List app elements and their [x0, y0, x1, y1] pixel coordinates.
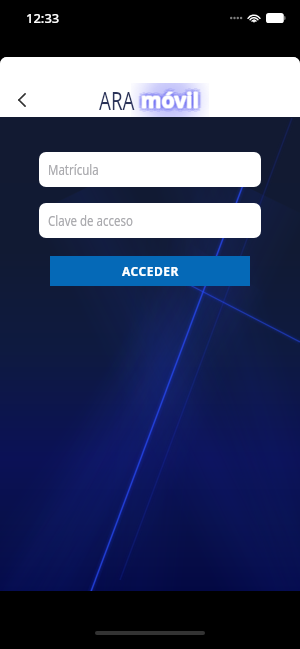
button[interactable]: Back: [5, 83, 39, 117]
staticText: móvil: [145, 86, 203, 115]
staticText: móvil: [137, 86, 195, 115]
staticText: móvil: [143, 84, 201, 113]
staticText: ARA: [99, 82, 135, 117]
button[interactable]: Matrícula: [39, 152, 261, 187]
button[interactable]: Clave de acceso: [39, 203, 261, 238]
staticText: móvil: [141, 88, 199, 117]
staticText: móvil: [138, 89, 196, 118]
staticText: Matrícula: [48, 160, 99, 179]
staticText: móvil: [139, 88, 197, 117]
staticText: móvil: [140, 86, 198, 115]
staticText: Clave de acceso: [48, 211, 133, 230]
staticText: móvil: [142, 86, 200, 115]
staticText: móvil: [143, 88, 201, 117]
staticText: móvil: [144, 83, 202, 112]
staticText: móvil: [141, 86, 199, 115]
staticText: móvil: [139, 84, 197, 113]
staticText: ACCEDER: [122, 263, 179, 279]
staticText: 12:33: [26, 9, 60, 27]
staticText: móvil: [138, 86, 196, 115]
staticText: móvil: [141, 87, 199, 116]
staticText: móvil: [141, 82, 199, 111]
staticText: móvil: [141, 90, 199, 119]
staticText: móvil: [144, 89, 202, 118]
button[interactable]: ACCEDER: [50, 256, 250, 286]
staticText: móvil: [144, 86, 202, 115]
staticText: móvil: [138, 83, 196, 112]
staticText: móvil: [141, 85, 199, 114]
staticText: móvil: [141, 84, 199, 113]
